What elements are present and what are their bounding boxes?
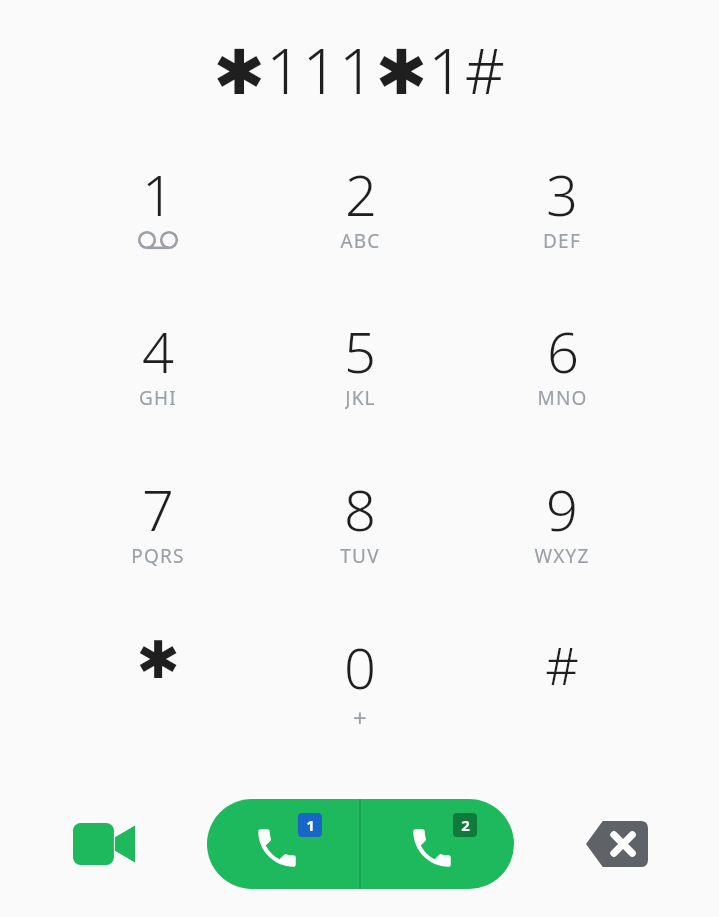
staticText: 1 xyxy=(306,815,315,835)
button[interactable]: Video call xyxy=(0,771,207,917)
button[interactable]: 2 xyxy=(259,140,461,297)
staticText: 2 xyxy=(461,815,470,835)
button[interactable]: ✱ xyxy=(56,613,259,771)
button[interactable]: 5 xyxy=(259,297,461,455)
staticText: PQRS xyxy=(131,543,185,567)
staticText: 8 xyxy=(344,471,376,533)
staticText: ✱ xyxy=(136,630,180,691)
staticText: JKL xyxy=(345,385,376,409)
button[interactable]: 0 xyxy=(259,613,461,771)
staticText: 6 xyxy=(547,313,579,375)
staticText: 3 xyxy=(546,156,578,218)
button[interactable]: 6 xyxy=(461,297,663,455)
button[interactable]: Call with SIM 2 xyxy=(361,799,514,889)
button[interactable]: Backspace xyxy=(514,771,719,917)
button[interactable]: 1 xyxy=(56,140,259,297)
staticText: GHI xyxy=(139,385,177,409)
button[interactable]: Call with SIM 1 xyxy=(207,799,359,889)
staticText: TUV xyxy=(340,543,380,567)
staticText: 4 xyxy=(142,313,174,375)
button[interactable]: 3 xyxy=(461,140,663,297)
staticText: 1 xyxy=(142,156,174,218)
staticText: DEF xyxy=(543,228,581,252)
staticText: 9 xyxy=(546,471,578,533)
staticText: 0 xyxy=(344,629,376,691)
staticText: WXYZ xyxy=(534,543,590,567)
staticText: 7 xyxy=(142,471,174,533)
staticText: 2 xyxy=(345,156,377,218)
button[interactable]: 4 xyxy=(56,297,259,455)
staticText: # xyxy=(545,629,579,691)
staticText: 5 xyxy=(344,313,376,375)
button[interactable]: 9 xyxy=(461,455,663,613)
staticText: ABC xyxy=(340,228,381,252)
staticText: ✱111✱1# xyxy=(213,28,506,112)
button[interactable]: 8 xyxy=(259,455,461,613)
staticText: + xyxy=(353,701,368,725)
staticText: MNO xyxy=(537,385,588,409)
button[interactable]: 7 xyxy=(56,455,259,613)
button[interactable]: # xyxy=(461,613,663,771)
